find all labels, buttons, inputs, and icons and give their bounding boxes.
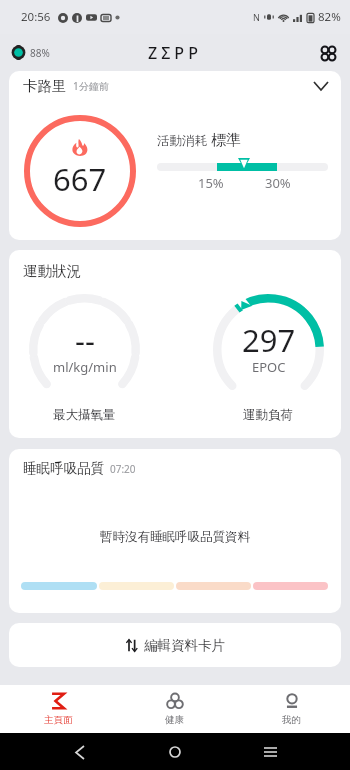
staticText: 07:20 [110,462,136,476]
staticText: 最大攝氧量 [53,407,116,423]
staticText: ΖΣPP [148,42,202,64]
staticText: 運動狀況 [23,262,81,280]
staticText: 297 [242,319,296,361]
staticText: 30% [265,174,291,192]
staticText: 暫時沒有睡眠呼吸品質資料 [9,529,341,545]
staticText: -- [75,319,95,361]
staticText: 標準 [211,131,241,150]
staticText: 88% [30,46,50,60]
staticText: 667 [53,158,107,200]
staticText: EPOC [252,358,286,376]
staticText: 編輯資料卡片 [144,637,225,654]
button[interactable]: 卡路里 [9,71,341,101]
staticText: 卡路里 [23,77,67,95]
button[interactable]: Home [160,737,190,767]
button[interactable]: Recents [255,737,285,767]
button[interactable]: Apps [316,41,340,65]
staticText: 睡眠呼吸品質 [23,460,104,477]
button[interactable]: -- [9,294,167,423]
staticText: 健康 [165,714,184,726]
button[interactable]: 我的 [233,685,350,733]
staticText: 20:56 [21,9,51,25]
staticText: 1分鐘前 [73,79,109,93]
button[interactable]: 297 [185,294,341,423]
staticText: 運動負荷 [243,407,293,423]
staticText: 15% [198,174,224,192]
staticText: 我的 [282,714,301,726]
staticText: 主頁面 [44,714,73,726]
staticText: ml/kg/min [53,358,117,376]
staticText: 活動消耗 [157,133,207,149]
staticText: 82% [318,9,341,25]
button[interactable]: 編輯資料卡片 [9,623,341,667]
button[interactable]: 88% [11,45,50,60]
button[interactable]: Back [65,737,95,767]
button[interactable]: 健康 [116,685,233,733]
button[interactable]: 主頁面 [0,685,116,733]
staticText: N [253,11,260,23]
